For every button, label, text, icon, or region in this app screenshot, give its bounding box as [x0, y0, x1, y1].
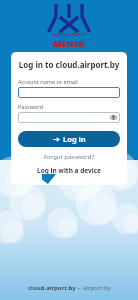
button[interactable]: Show password — [110, 114, 117, 121]
button[interactable] — [18, 87, 120, 98]
button[interactable]: Log in — [18, 131, 120, 147]
staticText: MINSK — [53, 37, 85, 49]
button[interactable]: Show password — [18, 112, 120, 123]
staticText: cloud.airport.by — [28, 284, 76, 292]
button[interactable]: Forgot password? — [18, 153, 120, 161]
button[interactable]: Log in with a device — [18, 166, 120, 175]
staticText: Log in to cloud.airport.by — [18, 59, 120, 70]
staticText: Account name or email — [18, 78, 78, 85]
staticText: Log in with a device — [37, 166, 101, 175]
staticText: Password — [18, 103, 43, 110]
staticText: – — [76, 284, 83, 292]
staticText: airport.by — [83, 284, 111, 292]
staticText: NATIONAL AIRPORT — [52, 32, 87, 37]
staticText: Forgot password? — [44, 153, 95, 161]
staticText: Log in — [63, 134, 86, 144]
